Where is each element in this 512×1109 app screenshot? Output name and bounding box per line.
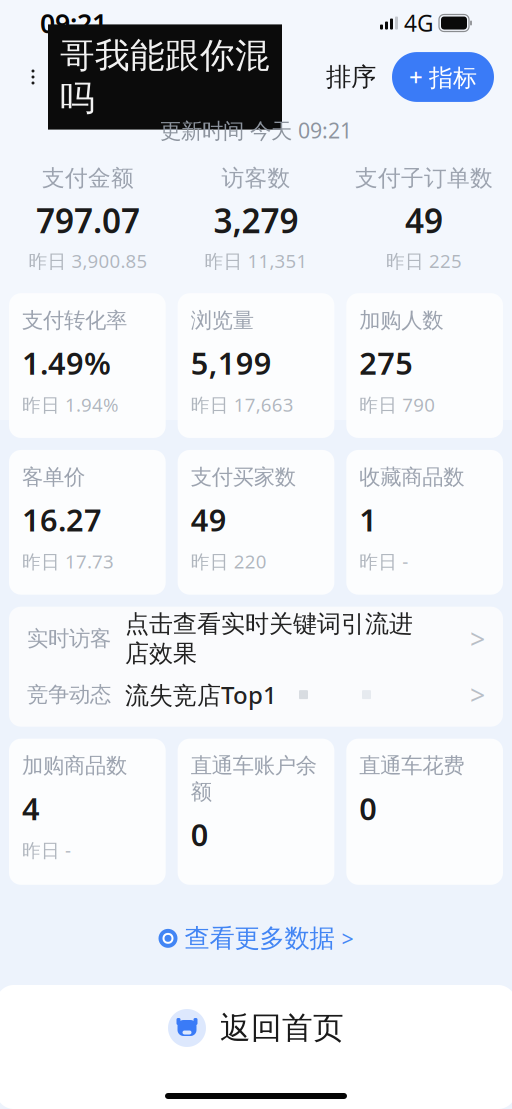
button[interactable]: 浏览量 bbox=[178, 293, 334, 438]
button[interactable]: 排序 bbox=[320, 53, 382, 100]
button[interactable]: 查看更多数据 bbox=[144, 915, 367, 962]
staticText: 昨日 - bbox=[359, 549, 408, 574]
button[interactable]: 实时访客 bbox=[9, 611, 503, 667]
staticText: 09:21 bbox=[40, 5, 107, 41]
staticText: 昨日 1.94% bbox=[22, 392, 119, 417]
staticText: 直通车账户余额 bbox=[191, 753, 317, 805]
button[interactable]: 客单价 bbox=[9, 450, 166, 595]
staticText: 支付子订单数 bbox=[355, 164, 493, 192]
button[interactable]: 竞争动态 bbox=[9, 667, 503, 723]
staticText: 访客数 bbox=[221, 164, 290, 192]
staticText: 275 bbox=[359, 342, 413, 383]
staticText: 4G bbox=[404, 8, 434, 38]
staticText: 昨日 17.73 bbox=[22, 549, 114, 574]
staticText: 昨日 3,900.85 bbox=[28, 248, 147, 273]
button[interactable]: 加购商品数 bbox=[9, 739, 166, 885]
staticText: 实时访客 bbox=[27, 626, 111, 652]
staticText: 点击查看实时关键词引流进店效果 bbox=[125, 609, 413, 668]
staticText: 797.07 bbox=[36, 198, 140, 242]
staticText: > bbox=[341, 924, 353, 952]
staticText: 5,199 bbox=[191, 342, 272, 383]
staticText: 竞争动态 bbox=[27, 682, 111, 708]
staticText: 49 bbox=[405, 198, 443, 242]
button[interactable]: 返回首页 bbox=[0, 985, 512, 1065]
staticText: 昨日 220 bbox=[191, 549, 267, 574]
button[interactable]: 更多 bbox=[18, 55, 48, 99]
staticText: 支付转化率 bbox=[22, 307, 127, 333]
button[interactable]: 支付买家数 bbox=[178, 450, 334, 595]
staticText: 昨日 17,663 bbox=[191, 392, 294, 417]
staticText: 16.27 bbox=[22, 499, 102, 540]
button[interactable]: 直通车账户余额 bbox=[178, 739, 334, 885]
staticText: 支付金额 bbox=[42, 164, 134, 192]
staticText: 流失竞店Top1 bbox=[125, 679, 277, 711]
staticText: 3,279 bbox=[213, 198, 298, 242]
staticText: 昨日 11,351 bbox=[204, 248, 307, 273]
staticText: 客单价 bbox=[22, 464, 85, 490]
staticText: 收藏商品数 bbox=[359, 464, 464, 490]
button[interactable]: 加购人数 bbox=[346, 293, 503, 438]
staticText: 49 bbox=[191, 499, 227, 540]
staticText: 浏览量 bbox=[191, 307, 254, 333]
staticText: 查看更多数据 bbox=[184, 923, 334, 954]
staticText: 返回首页 bbox=[220, 1009, 344, 1047]
staticText: 支付买家数 bbox=[191, 464, 296, 490]
staticText: > bbox=[470, 677, 485, 712]
staticText: 排序 bbox=[326, 61, 376, 92]
staticText: 1.49% bbox=[22, 342, 111, 383]
staticText: 4 bbox=[22, 788, 40, 829]
button[interactable]: 收藏商品数 bbox=[346, 450, 503, 595]
staticText: + 指标 bbox=[409, 61, 477, 93]
staticText: 加购人数 bbox=[359, 307, 443, 333]
staticText: > bbox=[470, 621, 485, 656]
staticText: 昨日 225 bbox=[386, 248, 462, 273]
staticText: 哥我能跟你混吗 bbox=[60, 34, 270, 120]
staticText: 0 bbox=[359, 788, 377, 829]
staticText: 昨日 790 bbox=[359, 392, 435, 417]
staticText: 昨日 - bbox=[22, 838, 71, 862]
staticText: 直通车花费 bbox=[359, 753, 464, 779]
staticText: 0 bbox=[191, 814, 209, 855]
staticText: 1 bbox=[359, 499, 377, 540]
staticText: 更新时间 今天 09:21 bbox=[160, 116, 352, 144]
button[interactable]: + 指标 bbox=[392, 52, 494, 102]
staticText: 加购商品数 bbox=[22, 753, 127, 779]
button[interactable]: 支付转化率 bbox=[9, 293, 166, 438]
button[interactable]: 直通车花费 bbox=[346, 739, 503, 885]
